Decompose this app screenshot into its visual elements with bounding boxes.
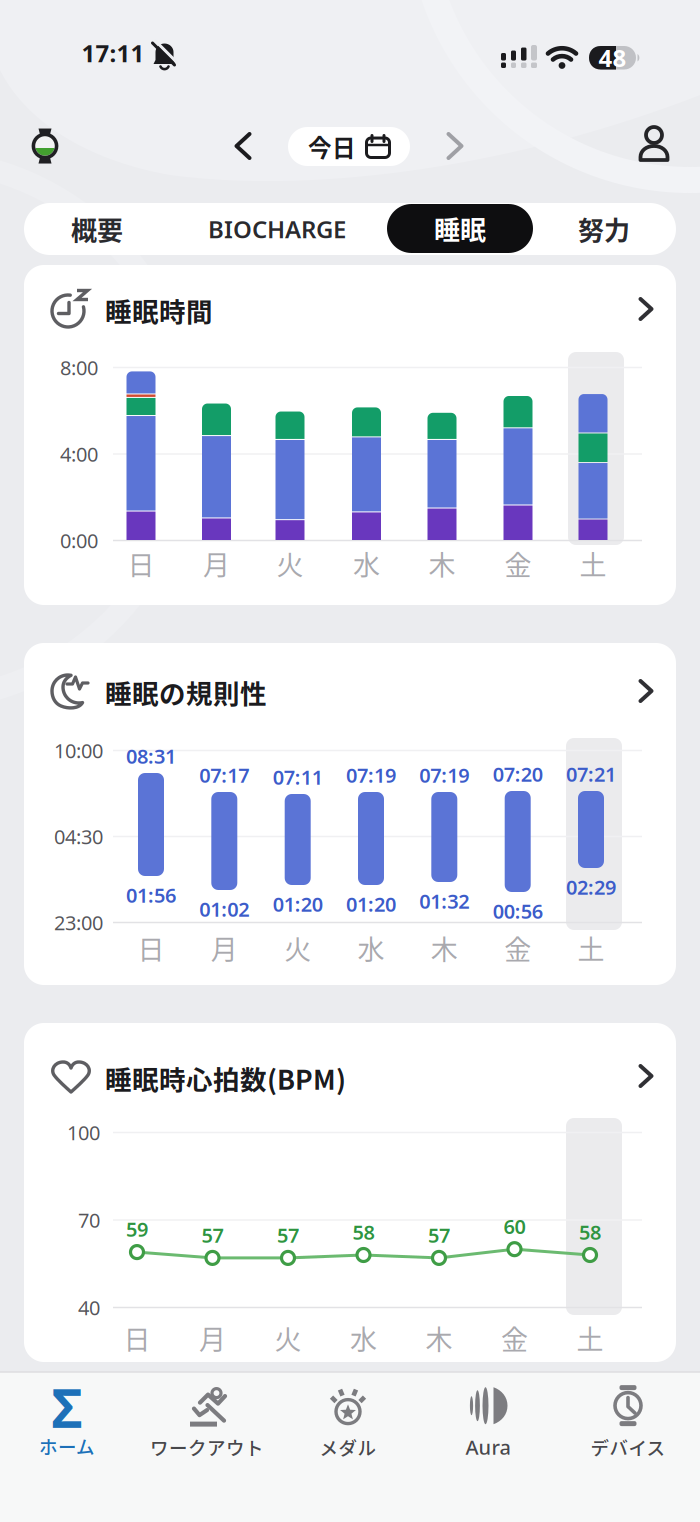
staticText: 59 (126, 1216, 148, 1242)
staticText: 水 (353, 544, 380, 583)
staticText: 金 (501, 1318, 528, 1358)
staticText: 日 (127, 544, 154, 583)
staticText: 今日 (308, 129, 356, 163)
staticText: 04:30 (54, 823, 103, 850)
button[interactable]: ワークアウト (137, 1379, 277, 1465)
staticText: 概要 (71, 210, 123, 248)
staticText: 00:56 (493, 898, 543, 924)
staticText: 100 (67, 1119, 100, 1146)
staticText: 火 (276, 544, 303, 583)
staticText: 水 (350, 1318, 377, 1358)
staticText: 57 (201, 1222, 223, 1248)
button[interactable]: BIOCHARGE (192, 203, 362, 255)
button[interactable]: ウォッチの状態 (23, 122, 67, 170)
staticText: 木 (428, 544, 455, 583)
staticText: 58 (352, 1219, 374, 1245)
button[interactable]: 今日 (288, 127, 410, 166)
staticText: 月 (199, 1318, 226, 1358)
button[interactable]: 睡眠時間の詳細 (24, 265, 676, 345)
staticText: 60 (503, 1213, 525, 1239)
staticText: 4:00 (60, 441, 98, 467)
staticText: 努力 (578, 210, 630, 248)
button[interactable]: 概要 (27, 203, 167, 255)
staticText: 01:02 (199, 896, 249, 922)
staticText: 火 (284, 928, 311, 968)
staticText: 水 (357, 928, 384, 968)
staticText: 07:20 (493, 761, 543, 787)
button[interactable]: 睡眠時心拍数の詳細 (24, 1023, 676, 1113)
staticText: 10:00 (54, 737, 103, 764)
staticText: ワークアウト (150, 1434, 264, 1460)
staticText: 金 (504, 544, 531, 583)
staticText: 57 (277, 1222, 299, 1248)
staticText: 01:56 (126, 882, 176, 908)
staticText: Aura (465, 1434, 510, 1460)
staticText: 火 (274, 1318, 301, 1358)
button[interactable]: 前の日 (221, 124, 265, 168)
staticText: 01:20 (346, 891, 396, 917)
staticText: 07:17 (199, 762, 249, 788)
staticText: 40 (78, 1294, 100, 1321)
staticText: 金 (504, 928, 531, 968)
button[interactable]: Aura (418, 1379, 558, 1465)
staticText: 07:19 (419, 762, 469, 788)
staticText: 01:32 (419, 888, 469, 914)
button[interactable]: デバイス (558, 1379, 698, 1465)
staticText: 57 (428, 1222, 450, 1248)
staticText: BIOCHARGE (208, 213, 346, 245)
staticText: 58 (579, 1219, 601, 1245)
staticText: 木 (431, 928, 458, 968)
staticText: 睡眠時間 (105, 291, 213, 329)
button[interactable]: メダル (278, 1379, 418, 1465)
staticText: 8:00 (60, 354, 98, 381)
staticText: 月 (203, 544, 230, 583)
staticText: 17:11 (81, 37, 144, 69)
staticText: 01:20 (273, 891, 323, 917)
button[interactable]: 努力 (544, 203, 664, 255)
staticText: 02:29 (566, 874, 616, 900)
staticText: 睡眠時心拍数(BPM) (105, 1059, 346, 1097)
staticText: 07:21 (566, 761, 616, 787)
staticText: 07:11 (273, 764, 323, 790)
staticText: 睡眠の規則性 (105, 673, 267, 711)
staticText: デバイス (590, 1434, 665, 1460)
staticText: メダル (319, 1434, 376, 1460)
staticText: 睡眠 (434, 210, 486, 247)
button[interactable]: プロフィール (632, 124, 676, 168)
staticText: 木 (425, 1318, 452, 1358)
staticText: 月 (211, 928, 238, 968)
staticText: 08:31 (126, 743, 176, 769)
staticText: 70 (78, 1207, 100, 1233)
staticText: 土 (577, 928, 604, 968)
staticText: 土 (579, 544, 606, 583)
button[interactable]: 睡眠の規則性の詳細 (24, 643, 676, 727)
button[interactable]: 次の日 (433, 124, 477, 168)
staticText: 48 (598, 42, 626, 74)
button[interactable]: Σ (2, 1379, 132, 1465)
staticText: 土 (576, 1318, 603, 1358)
staticText: 日 (123, 1318, 150, 1358)
staticText: 0:00 (60, 527, 98, 554)
staticText: 07:19 (346, 762, 396, 788)
staticText: 23:00 (54, 909, 103, 936)
staticText: ホーム (39, 1433, 95, 1459)
button[interactable]: 睡眠 (387, 204, 533, 253)
staticText: Σ (51, 1372, 82, 1443)
staticText: 日 (137, 928, 164, 968)
